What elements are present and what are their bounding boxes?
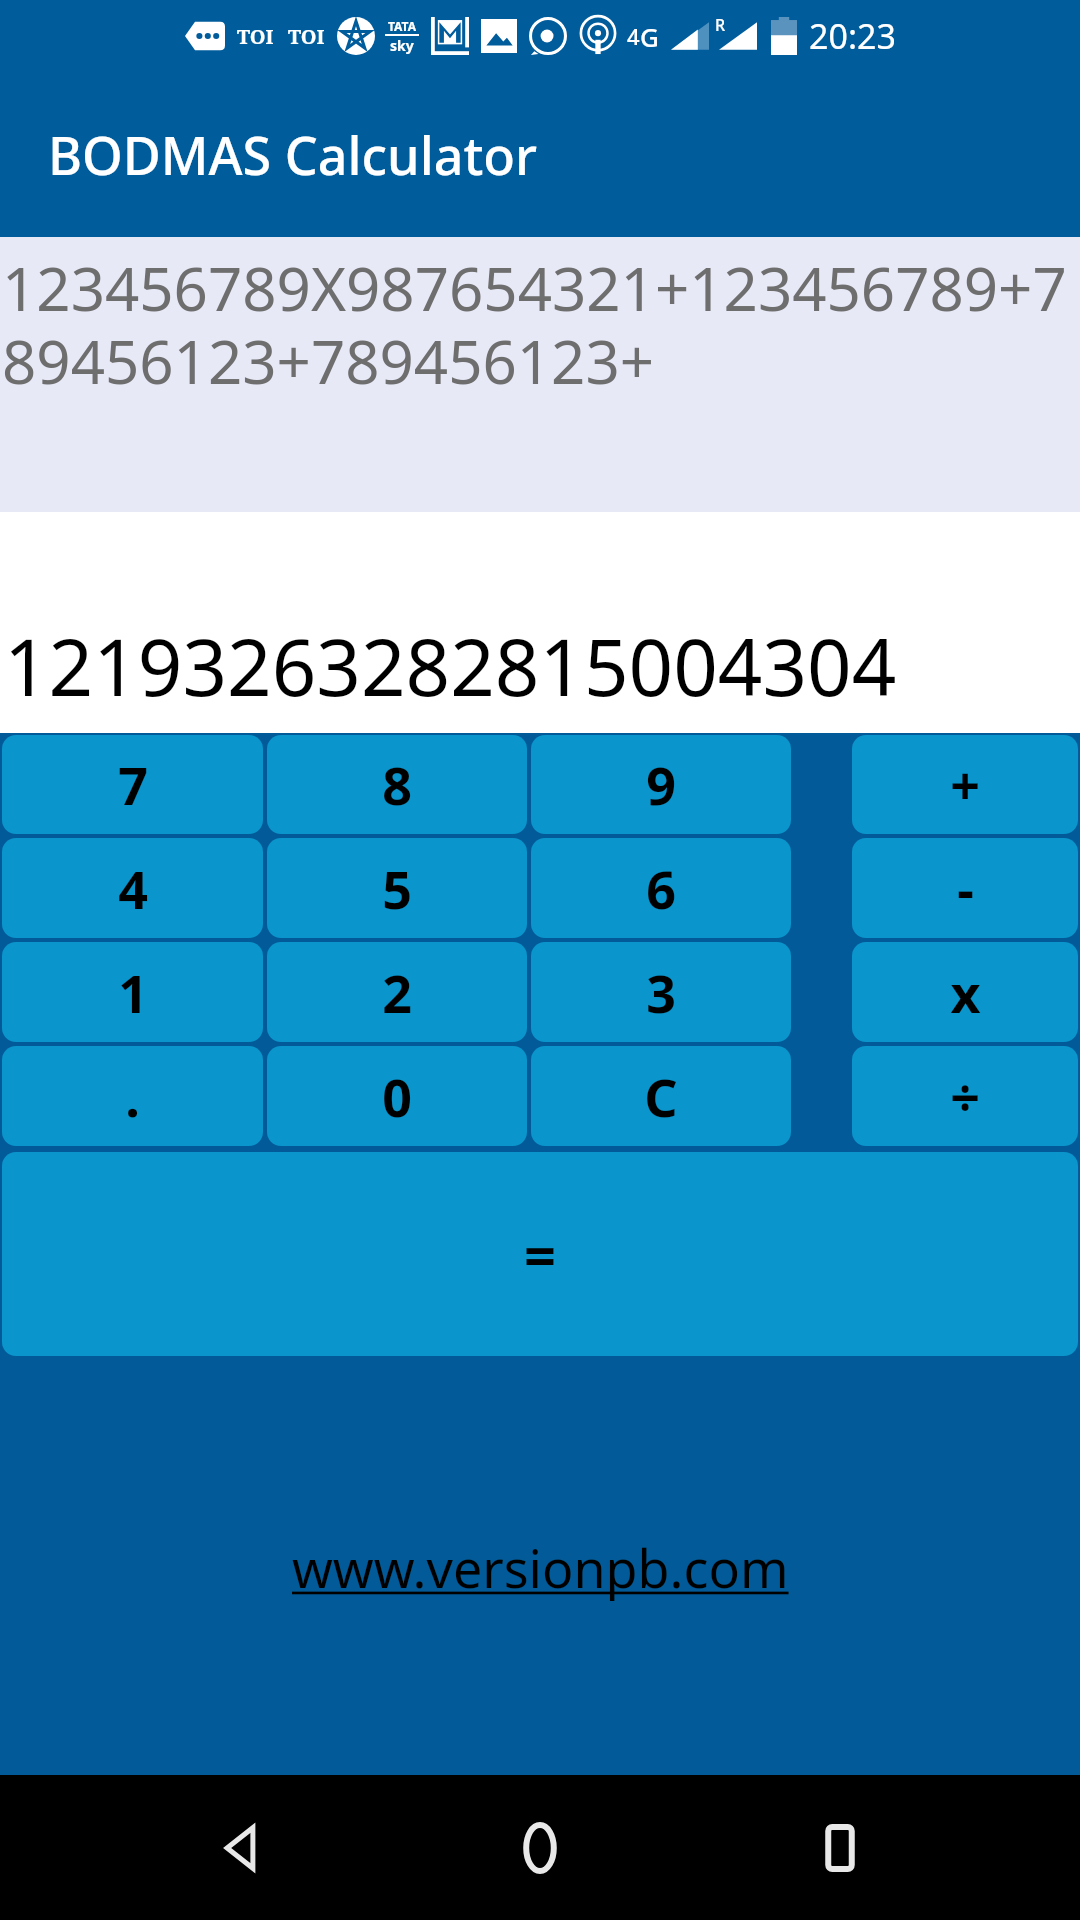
staticText: 4 bbox=[627, 21, 640, 51]
staticText: ÷ bbox=[950, 1061, 980, 1132]
staticText: + bbox=[950, 749, 980, 820]
staticText: TATA bbox=[388, 18, 416, 34]
button[interactable]: www.versionpb.com bbox=[286, 1526, 795, 1609]
button[interactable]: - bbox=[852, 838, 1078, 938]
button[interactable]: Recent apps bbox=[780, 1788, 900, 1908]
button[interactable]: 9 bbox=[531, 735, 791, 834]
staticText: BODMAS Calculator bbox=[48, 119, 538, 190]
staticText: TOI bbox=[237, 23, 274, 50]
staticText: - bbox=[957, 853, 974, 924]
button[interactable]: 8 bbox=[267, 735, 527, 834]
button[interactable]: 1 bbox=[2, 942, 263, 1042]
button[interactable]: 4 bbox=[2, 838, 263, 938]
staticText: 8 bbox=[382, 749, 412, 820]
button[interactable]: Back bbox=[180, 1788, 300, 1908]
button[interactable]: 2 bbox=[267, 942, 527, 1042]
button[interactable]: . bbox=[2, 1046, 263, 1146]
button[interactable]: 7 bbox=[2, 735, 263, 834]
staticText: 5 bbox=[382, 853, 412, 924]
button[interactable]: 0 bbox=[267, 1046, 527, 1146]
staticText: sky bbox=[390, 36, 414, 55]
button[interactable]: ÷ bbox=[852, 1046, 1078, 1146]
staticText: 6 bbox=[646, 853, 676, 924]
staticText: 4 bbox=[118, 853, 148, 924]
staticText: G bbox=[640, 19, 659, 54]
staticText: x bbox=[950, 957, 981, 1028]
staticText: C bbox=[644, 1061, 678, 1132]
button[interactable]: 5 bbox=[267, 838, 527, 938]
staticText: TOI bbox=[288, 23, 325, 50]
staticText: 2 bbox=[382, 957, 412, 1028]
staticText: 3 bbox=[646, 957, 676, 1028]
staticText: 1 bbox=[118, 957, 148, 1028]
button[interactable]: Home bbox=[480, 1788, 600, 1908]
staticText: 9 bbox=[646, 749, 676, 820]
staticText: 7 bbox=[118, 749, 148, 820]
staticText: = bbox=[524, 1216, 557, 1292]
staticText: 20:23 bbox=[809, 13, 896, 59]
button[interactable]: + bbox=[852, 735, 1078, 834]
staticText: 12193263282815004304 bbox=[4, 613, 897, 719]
staticText: . bbox=[125, 1061, 140, 1132]
staticText: R bbox=[715, 14, 726, 36]
button[interactable]: 6 bbox=[531, 838, 791, 938]
button[interactable]: = bbox=[2, 1152, 1078, 1356]
button[interactable]: x bbox=[852, 942, 1078, 1042]
staticText: 0 bbox=[382, 1061, 412, 1132]
staticText: 123456789X987654321+123456789+789456123+… bbox=[2, 247, 1078, 401]
button[interactable]: 3 bbox=[531, 942, 791, 1042]
button[interactable]: C bbox=[531, 1046, 791, 1146]
